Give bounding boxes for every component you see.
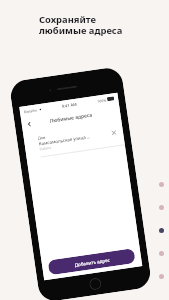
staticText: Любимые адреса (49, 112, 93, 125)
button[interactable]: Дом (23, 118, 125, 158)
button[interactable]: Назад (21, 115, 37, 133)
staticText: Комсомольская улица ... (38, 133, 91, 147)
staticText: Дом (38, 134, 46, 141)
staticText: 100% (97, 97, 106, 104)
button[interactable]: Добавить адрес (47, 248, 136, 275)
staticText: Добавить адрес (74, 257, 110, 268)
staticText: Сохраняйте любимые адреса (39, 13, 123, 37)
staticText: 9:41 AM (61, 102, 78, 109)
button[interactable]: Удалить адрес (109, 128, 118, 137)
staticText: Билайн (24, 107, 37, 114)
staticText: Работа (39, 145, 52, 151)
